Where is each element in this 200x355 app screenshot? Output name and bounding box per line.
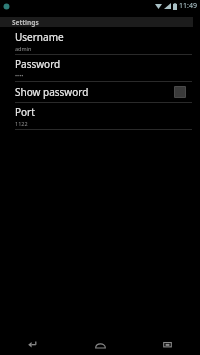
staticText: •••• xyxy=(15,72,24,79)
button[interactable]: Username xyxy=(0,28,200,54)
staticText: 1122 xyxy=(15,120,28,127)
staticText: 11:49 xyxy=(179,1,197,11)
button[interactable]: Show password xyxy=(0,82,200,102)
staticText: Settings xyxy=(12,18,39,27)
staticText: Port xyxy=(15,105,35,119)
staticText: Username xyxy=(15,30,64,44)
button[interactable]: Recent apps xyxy=(152,334,182,355)
button[interactable]: Password xyxy=(0,55,200,81)
staticText: admin xyxy=(15,45,32,52)
staticText: Password xyxy=(15,57,61,71)
staticText: Show password xyxy=(15,85,174,99)
other: Show password checkbox xyxy=(174,86,186,98)
button[interactable]: Port xyxy=(0,103,200,129)
button[interactable]: Home xyxy=(85,334,115,355)
button[interactable]: Back xyxy=(18,334,48,355)
